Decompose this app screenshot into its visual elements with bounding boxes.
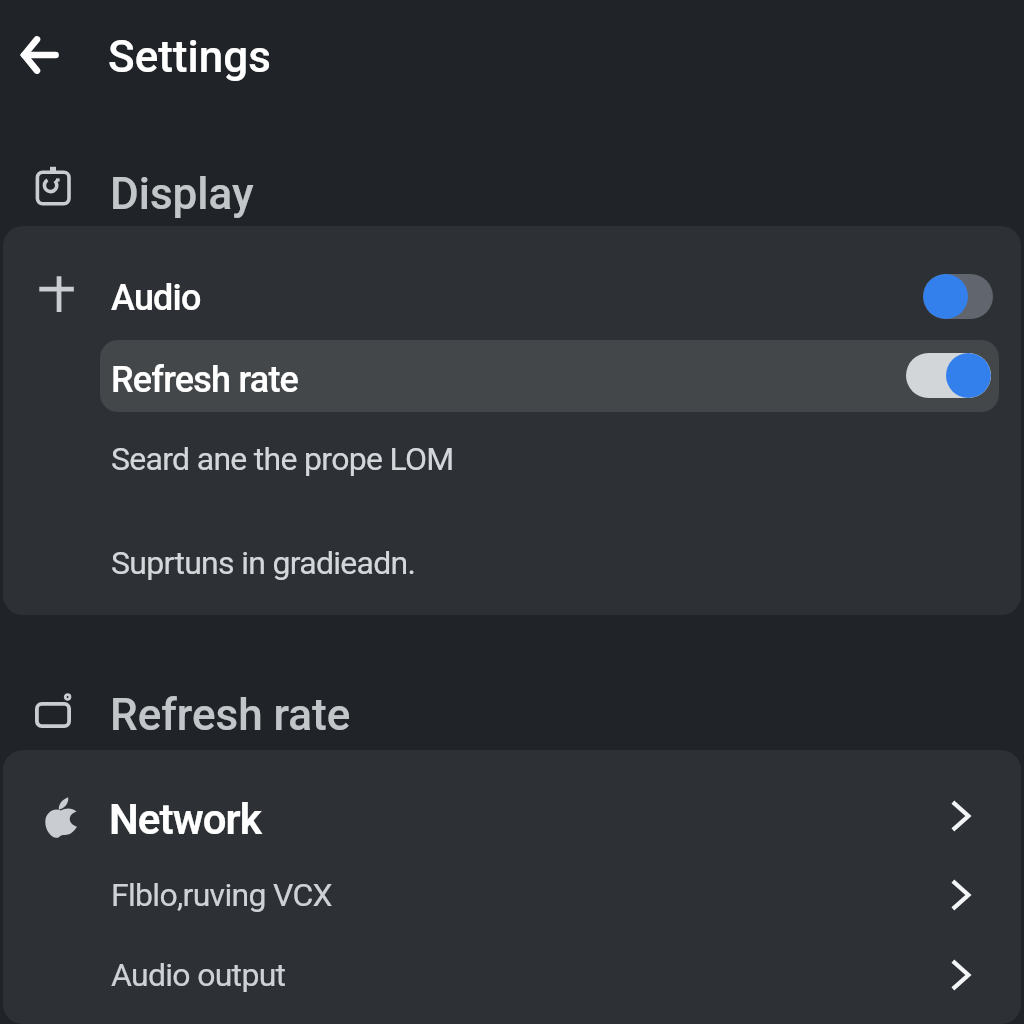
button[interactable]: Back xyxy=(10,25,70,85)
button[interactable]: Toggle Audio xyxy=(923,274,993,319)
button[interactable]: Audio xyxy=(3,226,1021,340)
button[interactable]: Audio output xyxy=(3,935,1021,1015)
staticText: Audio output xyxy=(111,956,286,994)
staticText: Audio xyxy=(111,277,201,319)
staticText: Seard ane the prope LOM xyxy=(111,440,454,478)
staticText: Flblo,ruving VCX xyxy=(111,876,332,914)
button[interactable]: Toggle Refresh rate xyxy=(906,353,991,398)
button[interactable]: Flblo,ruving VCX xyxy=(3,855,1021,935)
staticText: Network xyxy=(109,795,262,844)
staticText: Settings xyxy=(108,31,271,83)
staticText: Suprtuns in gradieadn. xyxy=(111,544,416,582)
button[interactable]: Network xyxy=(3,750,1021,870)
staticText: Refresh rate xyxy=(111,359,299,401)
staticText: Display xyxy=(110,168,254,220)
button[interactable]: Refresh rate xyxy=(100,340,999,412)
staticText: Refresh rate xyxy=(110,689,351,741)
